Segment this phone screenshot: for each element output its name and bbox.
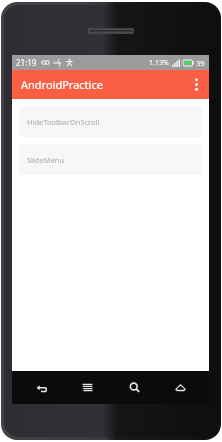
button[interactable]: HideToolbarOnScroll	[19, 106, 202, 137]
staticText: SlideMenu	[27, 155, 65, 165]
staticText: 39	[196, 58, 205, 68]
button[interactable]: Back	[24, 371, 58, 404]
button[interactable]: Home	[163, 371, 197, 404]
button[interactable]: Search	[117, 371, 151, 404]
staticText: 1.13%	[149, 58, 169, 68]
staticText: AndroidPractice	[21, 77, 103, 92]
staticText: 21:19	[16, 57, 37, 68]
button[interactable]: Recent apps	[70, 371, 104, 404]
button[interactable]: More options	[183, 70, 209, 99]
staticText: HideToolbarOnScroll	[27, 117, 100, 127]
button[interactable]: SlideMenu	[19, 144, 202, 175]
